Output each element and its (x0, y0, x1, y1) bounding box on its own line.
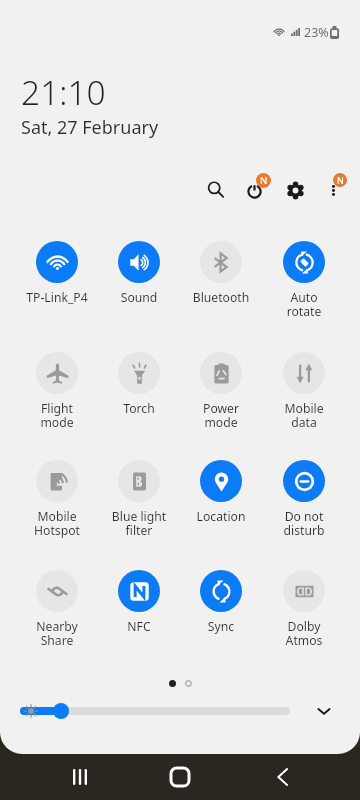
staticText: Mobile Hotspot (16, 508, 98, 539)
button[interactable]: Power off (236, 172, 272, 208)
button[interactable] (169, 680, 176, 687)
button[interactable]: Sync (180, 570, 262, 635)
staticText: 23% (304, 24, 329, 41)
button[interactable]: Mobile data (263, 352, 345, 431)
button[interactable]: Bluetooth (180, 241, 262, 306)
staticText: Sound (98, 289, 180, 306)
button[interactable]: NFC (98, 570, 180, 635)
staticText: NFC (98, 618, 180, 635)
staticText: Auto rotate (263, 289, 345, 320)
staticText: Mobile data (263, 400, 345, 431)
button[interactable]: Location (180, 460, 262, 525)
staticText: Do not disturb (263, 508, 345, 539)
staticText: Dolby Atmos (263, 618, 345, 649)
button[interactable]: Search (198, 172, 234, 208)
button[interactable]: Flight mode (16, 352, 98, 431)
button[interactable]: Blue light filter (98, 460, 180, 539)
button[interactable]: Dolby Atmos (263, 570, 345, 649)
button[interactable]: Back (262, 757, 302, 797)
button[interactable] (185, 680, 192, 687)
button[interactable]: Nearby Share (16, 570, 98, 649)
button[interactable]: Torch (98, 352, 180, 417)
staticText: Torch (98, 400, 180, 417)
button[interactable] (20, 707, 290, 715)
button[interactable]: Settings (277, 172, 313, 208)
staticText: Power mode (180, 400, 262, 431)
staticText: TP-Link_P4 (16, 289, 98, 306)
staticText: Nearby Share (16, 618, 98, 649)
button[interactable]: Mobile Hotspot (16, 460, 98, 539)
staticText: Sync (180, 618, 262, 635)
button[interactable]: Home (160, 757, 200, 797)
button[interactable]: Recents (60, 757, 100, 797)
button[interactable]: Auto rotate (263, 241, 345, 320)
button[interactable]: Power mode (180, 352, 262, 431)
button[interactable]: Do not disturb (263, 460, 345, 539)
button[interactable]: More options (315, 172, 351, 208)
button[interactable]: TP-Link_P4 (16, 241, 98, 306)
staticText: Location (180, 508, 262, 525)
staticText: Flight mode (16, 400, 98, 431)
button[interactable]: Expand (310, 697, 338, 725)
staticText: Blue light filter (98, 508, 180, 539)
staticText: N (337, 174, 344, 186)
staticText: Sat, 27 February (21, 115, 159, 140)
staticText: 21:10 (21, 69, 106, 115)
staticText: Bluetooth (180, 289, 262, 306)
button[interactable]: Sound (98, 241, 180, 306)
staticText: N (260, 174, 268, 187)
